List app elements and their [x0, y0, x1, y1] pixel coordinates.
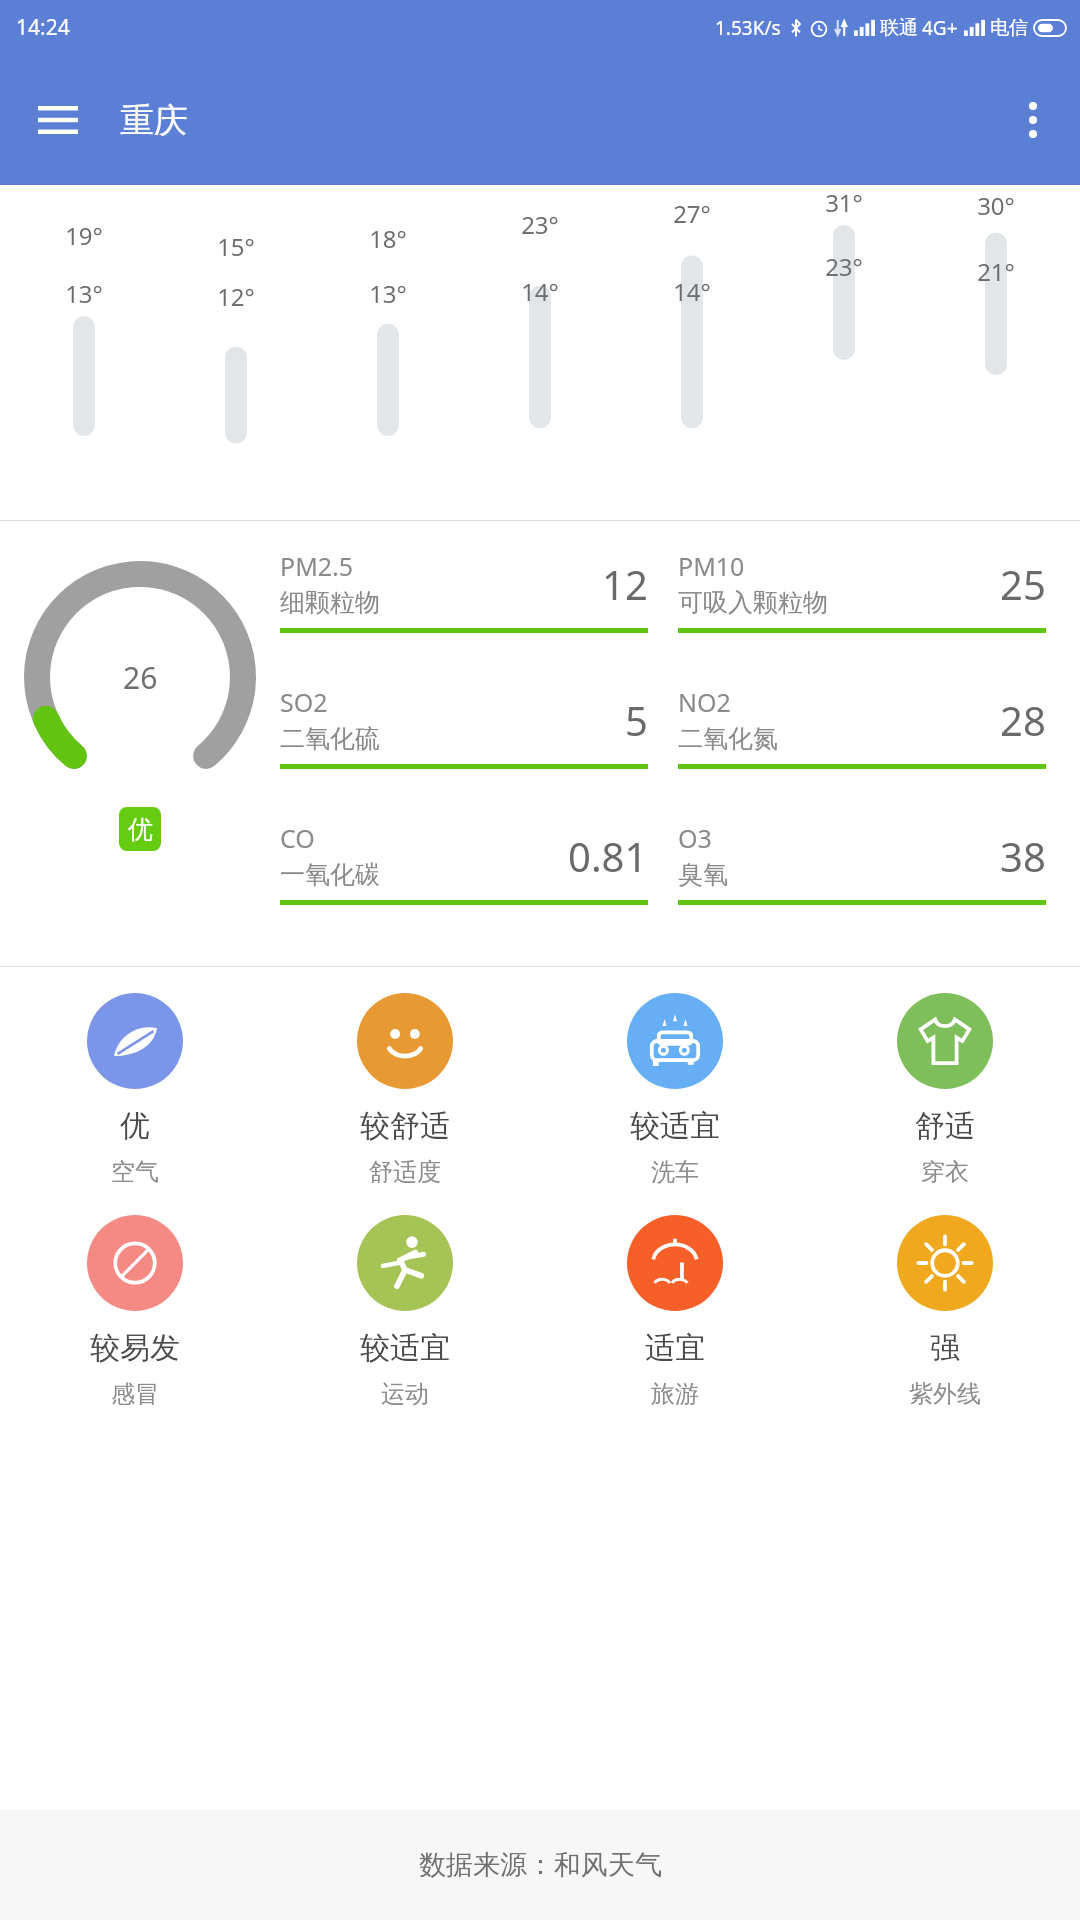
staticText: 1.53K/s	[715, 15, 781, 41]
staticText: 二氧化硫	[280, 723, 380, 754]
staticText: 二氧化氮	[678, 723, 778, 754]
staticText: 臭氧	[678, 859, 728, 890]
staticText: 紫外线	[909, 1379, 981, 1409]
staticText: 适宜	[645, 1329, 705, 1367]
staticText: 31°	[825, 186, 863, 219]
staticText: 舒适度	[369, 1157, 441, 1187]
staticText: 14:24	[16, 13, 70, 42]
staticText: 23°	[521, 208, 559, 241]
staticText: 27°	[673, 197, 711, 230]
button[interactable]: 适宜	[540, 1215, 810, 1409]
staticText: 空气	[111, 1157, 159, 1187]
staticText: 较易发	[90, 1329, 180, 1367]
staticText: 较适宜	[360, 1329, 450, 1367]
staticText: 28	[1000, 693, 1046, 747]
staticText: 联通	[880, 16, 918, 40]
staticText: 一氧化碳	[280, 859, 380, 890]
staticText: 穿衣	[921, 1157, 969, 1187]
staticText: 细颗粒物	[280, 587, 380, 618]
button[interactable]: PM10	[678, 549, 1046, 633]
staticText: 12°	[217, 280, 255, 313]
button[interactable]: 较适宜	[540, 993, 810, 1187]
staticText: PM10	[678, 549, 745, 583]
staticText: 数据来源：和风天气	[419, 1848, 662, 1882]
staticText: 14°	[521, 275, 559, 308]
button[interactable]: O3	[678, 821, 1046, 905]
staticText: 旅游	[651, 1379, 699, 1409]
button[interactable]: 舒适	[810, 993, 1080, 1187]
button[interactable]: PM2.5	[280, 549, 648, 633]
staticText: 38	[1000, 829, 1046, 883]
staticText: 5	[625, 693, 648, 747]
staticText: 感冒	[111, 1379, 159, 1409]
button[interactable]: 优	[0, 993, 270, 1187]
button[interactable]: 较易发	[0, 1215, 270, 1409]
staticText: 舒适	[915, 1107, 975, 1145]
button[interactable]: More options	[1002, 89, 1064, 151]
staticText: 电信	[990, 16, 1028, 40]
staticText: 优	[128, 814, 153, 845]
staticText: 洗车	[651, 1157, 699, 1187]
button[interactable]: 强	[810, 1215, 1080, 1409]
button[interactable]: SO2	[280, 685, 648, 769]
staticText: 30°	[977, 189, 1015, 222]
staticText: 可吸入颗粒物	[678, 587, 828, 618]
staticText: 19°	[65, 219, 103, 252]
staticText: 23°	[825, 250, 863, 283]
staticText: 26	[123, 657, 158, 698]
button[interactable]: 较舒适	[270, 993, 540, 1187]
staticText: 较适宜	[630, 1107, 720, 1145]
staticText: 重庆	[120, 99, 188, 142]
staticText: 0.81	[568, 829, 648, 883]
staticText: 14°	[673, 275, 711, 308]
staticText: CO	[280, 821, 315, 855]
button[interactable]: 优	[119, 807, 161, 851]
staticText: PM2.5	[280, 549, 354, 583]
staticText: 15°	[217, 230, 255, 263]
staticText: 13°	[369, 277, 407, 310]
staticText: NO2	[678, 685, 731, 719]
staticText: SO2	[280, 685, 328, 719]
button[interactable]: Menu	[26, 88, 90, 152]
staticText: O3	[678, 821, 712, 855]
staticText: 强	[930, 1329, 960, 1367]
staticText: 运动	[381, 1379, 429, 1409]
staticText: 12	[602, 557, 648, 611]
staticText: 较舒适	[360, 1107, 450, 1145]
button[interactable]: NO2	[678, 685, 1046, 769]
staticText: 4G+	[922, 15, 958, 41]
staticText: 13°	[65, 277, 103, 310]
staticText: 18°	[369, 222, 407, 255]
staticText: 21°	[977, 255, 1015, 288]
button[interactable]: CO	[280, 821, 648, 905]
button[interactable]: 较适宜	[270, 1215, 540, 1409]
staticText: 25	[1000, 557, 1046, 611]
staticText: 优	[120, 1107, 150, 1145]
